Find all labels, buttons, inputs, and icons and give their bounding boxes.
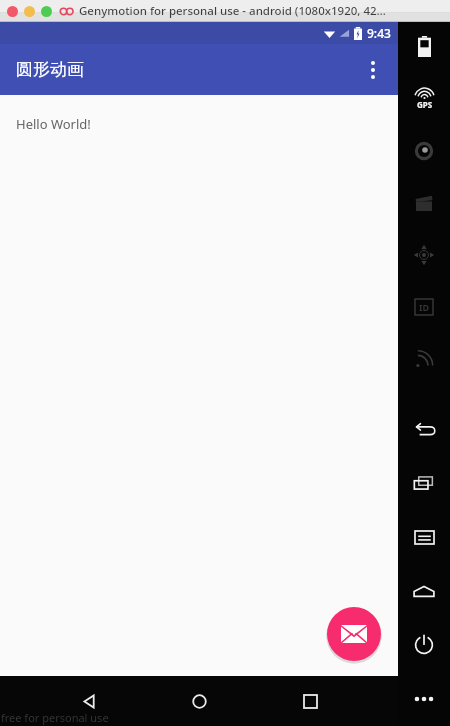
button[interactable]: Screen recording bbox=[398, 191, 450, 215]
other: Identifiers bbox=[414, 297, 434, 317]
staticText: ID bbox=[419, 301, 430, 313]
button[interactable]: Back bbox=[398, 417, 450, 441]
other: Camera bbox=[414, 141, 434, 161]
button[interactable]: Camera bbox=[398, 139, 450, 163]
button[interactable]: Battery bbox=[398, 34, 450, 58]
other: Back bbox=[413, 422, 435, 436]
staticText: Hello World! bbox=[16, 115, 91, 133]
button[interactable]: Recents bbox=[288, 679, 332, 723]
other: Home bbox=[413, 585, 435, 598]
button[interactable]: Minimize bbox=[24, 6, 35, 17]
button[interactable]: GPS bbox=[398, 87, 450, 111]
staticText: 圆形动画 bbox=[16, 59, 84, 80]
button[interactable]: Identifiers bbox=[398, 295, 450, 319]
button[interactable]: Back bbox=[67, 679, 111, 723]
button[interactable]: Menu bbox=[398, 525, 450, 549]
staticText: GPS bbox=[417, 99, 433, 110]
other: GPS bbox=[416, 89, 433, 110]
other: Rotate bbox=[413, 475, 435, 491]
button[interactable]: Rotate bbox=[398, 471, 450, 495]
button[interactable]: Close bbox=[7, 6, 18, 17]
button[interactable]: Network bbox=[398, 347, 450, 371]
other: Battery bbox=[418, 36, 431, 57]
button[interactable]: Power bbox=[398, 633, 450, 657]
staticText: 9:43 bbox=[367, 25, 391, 41]
other: Power bbox=[414, 635, 434, 655]
button[interactable]: More options bbox=[354, 51, 392, 89]
other: Menu bbox=[414, 530, 435, 545]
staticText: Genymotion for personal use - android (1… bbox=[79, 3, 386, 19]
other: More bbox=[413, 696, 435, 702]
button[interactable]: Home bbox=[398, 579, 450, 603]
button[interactable]: Maximize bbox=[41, 6, 52, 17]
other: Virtual sensors bbox=[414, 245, 434, 265]
other: Network bbox=[415, 350, 433, 368]
button[interactable]: Home bbox=[177, 679, 221, 723]
button[interactable]: Send email bbox=[327, 607, 381, 661]
other: Screen recording bbox=[414, 193, 434, 213]
button[interactable]: More bbox=[398, 687, 450, 711]
button[interactable]: Virtual sensors bbox=[398, 243, 450, 267]
staticText: free for personal use bbox=[1, 710, 109, 725]
